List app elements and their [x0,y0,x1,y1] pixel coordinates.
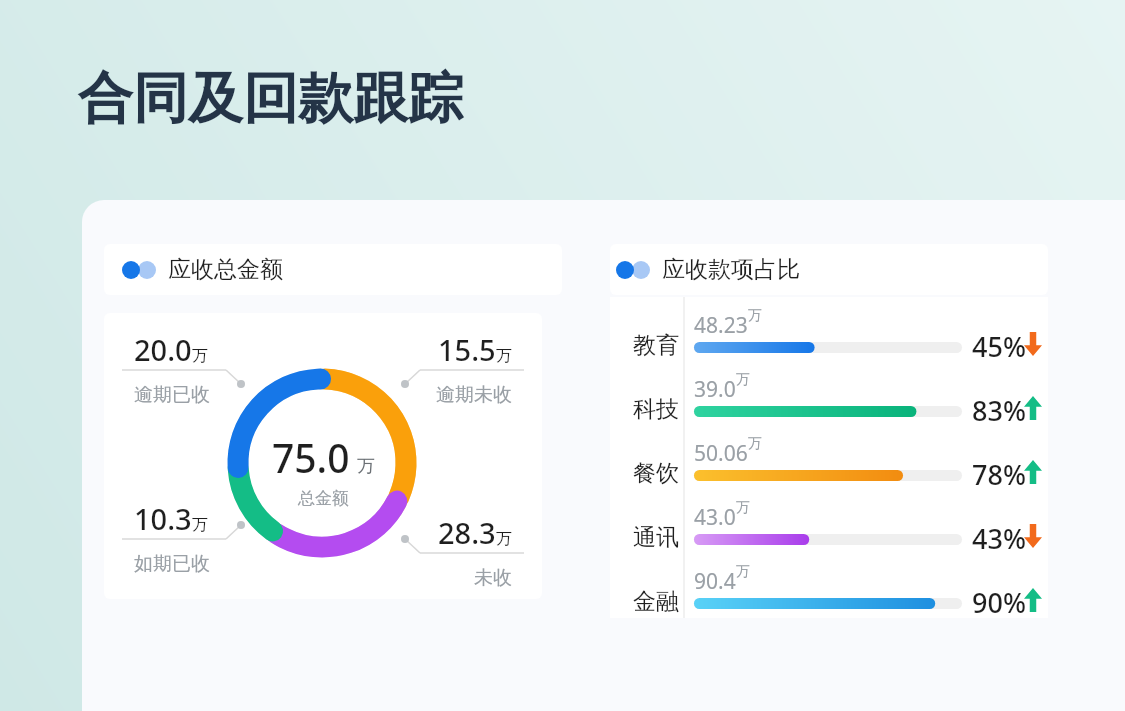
button[interactable]: 20.0 [104,313,542,599]
staticText: 万 [736,563,750,581]
staticText: 合同及回款跟踪 [78,64,463,133]
staticText: 90% [972,584,1026,621]
staticText: 总金额 [298,488,349,509]
staticText: 应收款项占比 [662,255,800,284]
button[interactable]: 餐饮 [610,438,1048,498]
staticText: 90.4 [694,567,736,596]
other: Increase [1024,460,1042,484]
other: Decrease [1024,332,1042,356]
staticText: 逾期未收 [436,383,512,407]
staticText: 万 [748,307,762,325]
staticText: 通讯 [630,523,682,552]
staticText: 万 [192,515,208,535]
other: Increase [1024,396,1042,420]
staticText: 45% [972,328,1026,365]
staticText: 20.0 [134,330,192,369]
staticText: 万 [748,435,762,453]
button[interactable]: 金融 [610,566,1048,626]
staticText: 48.23 [694,311,748,340]
staticText: 如期已收 [134,552,210,576]
staticText: 75.0 [272,431,350,484]
button[interactable]: 教育 [610,310,1048,370]
staticText: 餐饮 [630,459,682,488]
staticText: 万 [496,529,512,549]
staticText: 金融 [630,587,682,616]
staticText: 教育 [630,331,682,360]
button[interactable]: 应收款项占比 [610,244,1048,295]
staticText: 未收 [474,566,512,590]
staticText: 万 [496,346,512,366]
button[interactable]: 科技 [610,374,1048,434]
staticText: 10.3 [134,499,192,538]
staticText: 43.0 [694,503,736,532]
button[interactable]: 应收总金额 [104,244,562,295]
staticText: 15.5 [438,330,496,369]
staticText: 应收总金额 [168,255,283,284]
staticText: 万 [192,346,208,366]
staticText: 78% [972,456,1026,493]
staticText: 50.06 [694,439,748,468]
staticText: 万 [736,499,750,517]
other: Decrease [1024,524,1042,548]
staticText: 83% [972,392,1026,429]
staticText: 科技 [630,395,682,424]
button[interactable]: 通讯 [610,502,1048,562]
staticText: 39.0 [694,375,736,404]
staticText: 万 [357,455,375,478]
staticText: 28.3 [438,513,496,552]
other: Increase [1024,588,1042,612]
staticText: 逾期已收 [134,383,210,407]
staticText: 万 [736,371,750,389]
staticText: 43% [972,520,1026,557]
